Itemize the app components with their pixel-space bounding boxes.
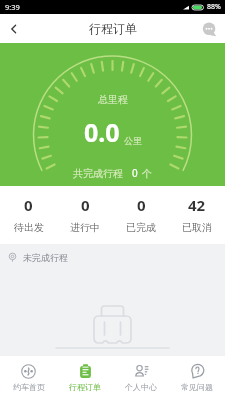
staticText: 9:39 xyxy=(5,2,20,12)
button[interactable]: 0 xyxy=(0,195,57,234)
staticText: 0.0 xyxy=(84,115,120,149)
button[interactable]: 常见问题 xyxy=(169,364,225,392)
button[interactable]: 约车首页 xyxy=(0,364,57,392)
staticText: 行程订单 xyxy=(89,21,137,36)
staticText: 已完成 xyxy=(126,221,156,234)
button[interactable]: Customer service xyxy=(198,18,220,40)
staticText: 已取消 xyxy=(182,221,212,234)
button[interactable]: 0 xyxy=(113,195,169,234)
button[interactable]: 个人中心 xyxy=(113,364,169,392)
staticText: 总里程 xyxy=(98,93,128,106)
staticText: 约车首页 xyxy=(13,382,45,392)
staticText: 0 xyxy=(137,195,146,215)
staticText: 公里 xyxy=(124,135,142,146)
button[interactable]: 42 xyxy=(169,195,225,234)
staticText: 0 xyxy=(132,166,138,180)
staticText: 88% xyxy=(207,2,221,12)
staticText: 0 xyxy=(24,195,33,215)
staticText: 0 xyxy=(81,195,90,215)
button[interactable]: 0 xyxy=(57,195,113,234)
button[interactable]: 行程订单 xyxy=(57,364,113,392)
button[interactable]: Back xyxy=(0,15,28,43)
staticText: 42 xyxy=(188,195,206,215)
staticText: 共完成行程 xyxy=(73,167,123,180)
staticText: 待出发 xyxy=(14,221,44,234)
staticText: 个 xyxy=(142,167,152,180)
staticText: 个人中心 xyxy=(125,382,157,392)
staticText: 行程订单 xyxy=(69,382,101,392)
staticText: 进行中 xyxy=(70,221,100,234)
staticText: 未完成行程 xyxy=(23,252,68,263)
staticText: 常见问题 xyxy=(181,382,213,392)
